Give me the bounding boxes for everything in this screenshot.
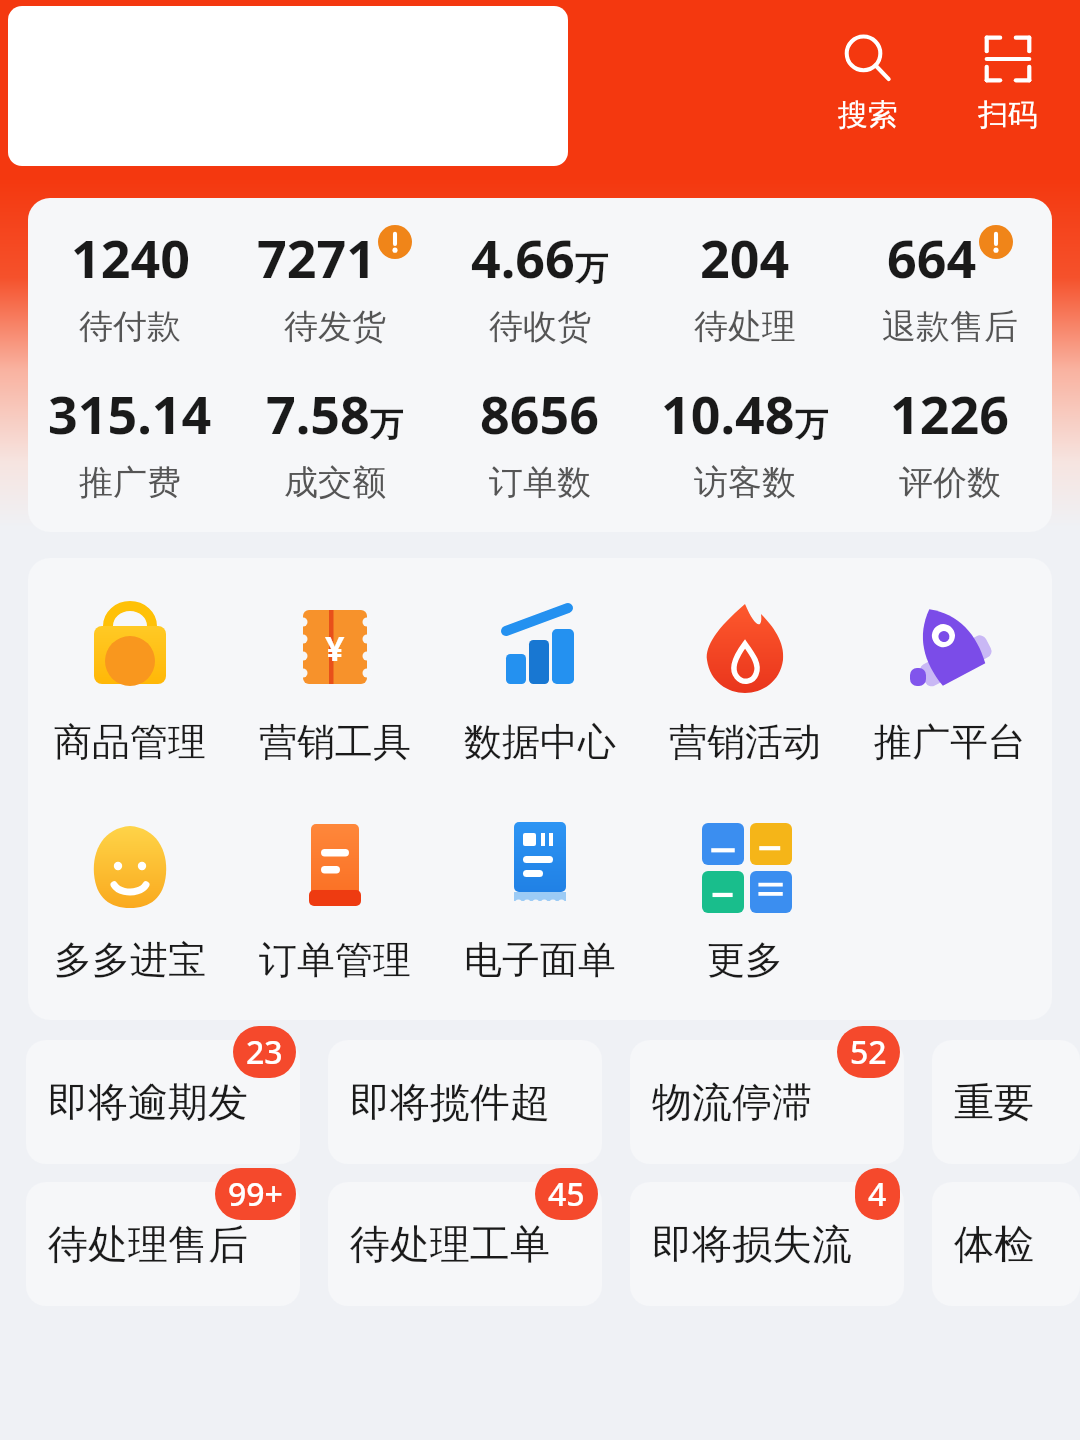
staticText: 营销活动 bbox=[669, 718, 821, 766]
button[interactable]: 物流停滞 bbox=[630, 1040, 904, 1164]
staticText: 即将揽件超时 bbox=[350, 1077, 580, 1127]
button[interactable]: 数据中心 bbox=[437, 592, 642, 768]
staticText: 退款售后 bbox=[882, 305, 1018, 348]
button[interactable]: 315.14 bbox=[28, 376, 232, 506]
staticText: 评价数 bbox=[899, 461, 1001, 504]
staticText: 万 bbox=[370, 404, 403, 446]
button[interactable]: 7271 bbox=[232, 220, 437, 350]
button[interactable]: 664 bbox=[847, 220, 1052, 350]
button[interactable]: 更多 bbox=[642, 810, 847, 986]
staticText: 订单数 bbox=[489, 461, 591, 504]
staticText: 订单管理 bbox=[259, 936, 411, 984]
button[interactable]: 8656 bbox=[437, 376, 642, 506]
staticText: 10.48 bbox=[661, 378, 795, 449]
staticText: 1240 bbox=[71, 222, 190, 293]
staticText: 万 bbox=[575, 248, 608, 290]
staticText: 电子面单 bbox=[464, 936, 616, 984]
button[interactable]: 多多进宝 bbox=[28, 810, 232, 986]
staticText: 成交额 bbox=[284, 461, 386, 504]
staticText: 23 bbox=[246, 1030, 283, 1074]
staticText: 商品管理 bbox=[54, 718, 206, 766]
staticText: 即将逾期发货 bbox=[48, 1077, 278, 1127]
staticText: 更多 bbox=[707, 936, 783, 984]
button[interactable]: 7.58 bbox=[232, 376, 437, 506]
staticText: 1226 bbox=[890, 378, 1009, 449]
button[interactable]: 电子面单 bbox=[437, 810, 642, 986]
staticText: 664 bbox=[887, 222, 977, 293]
button[interactable]: 推广平台 bbox=[847, 592, 1052, 768]
button[interactable]: Scan QR code bbox=[960, 24, 1056, 138]
button[interactable]: 即将逾期发货 bbox=[26, 1040, 300, 1164]
button[interactable]: Search bbox=[820, 24, 916, 138]
staticText: 4.66 bbox=[471, 222, 575, 293]
staticText: 搜索 bbox=[838, 96, 898, 134]
staticText: 数据中心 bbox=[464, 718, 616, 766]
button[interactable]: 重要 bbox=[932, 1040, 1080, 1164]
staticText: 体检 bbox=[954, 1219, 1034, 1269]
button[interactable]: 商品管理 bbox=[28, 592, 232, 768]
staticText: 204 bbox=[700, 222, 790, 293]
staticText: 扫码 bbox=[978, 96, 1038, 134]
staticText: 45 bbox=[548, 1172, 585, 1216]
staticText: 多多进宝 bbox=[54, 936, 206, 984]
button[interactable]: 待处理售后 bbox=[26, 1182, 300, 1306]
staticText: 8656 bbox=[480, 378, 599, 449]
staticText: 4 bbox=[868, 1172, 887, 1216]
button[interactable]: 体检 bbox=[932, 1182, 1080, 1306]
staticText: 营销工具 bbox=[259, 718, 411, 766]
staticText: 待付款 bbox=[79, 305, 181, 348]
staticText: 7271 bbox=[257, 222, 376, 293]
button[interactable]: 营销活动 bbox=[642, 592, 847, 768]
staticText: 万 bbox=[795, 404, 828, 446]
staticText: 315.14 bbox=[48, 378, 212, 449]
staticText: 99+ bbox=[228, 1172, 283, 1216]
button[interactable]: 待处理工单 bbox=[328, 1182, 602, 1306]
button[interactable]: 即将损失流量 bbox=[630, 1182, 904, 1306]
staticText: 访客数 bbox=[694, 461, 796, 504]
button[interactable]: 10.48 bbox=[642, 376, 847, 506]
button[interactable]: 204 bbox=[642, 220, 847, 350]
button[interactable]: 1240 bbox=[28, 220, 232, 350]
staticText: 待处理工单 bbox=[350, 1219, 550, 1269]
staticText: 52 bbox=[850, 1030, 887, 1074]
button[interactable]: 订单管理 bbox=[232, 810, 437, 986]
button[interactable]: 即将揽件超时 bbox=[328, 1040, 602, 1164]
staticText: 待发货 bbox=[284, 305, 386, 348]
button[interactable]: 4.66 bbox=[437, 220, 642, 350]
staticText: 待处理售后 bbox=[48, 1219, 248, 1269]
staticText: 推广平台 bbox=[874, 718, 1026, 766]
button[interactable]: ¥ bbox=[232, 592, 437, 768]
staticText: ¥ bbox=[325, 625, 345, 671]
staticText: 即将损失流量 bbox=[652, 1219, 882, 1269]
staticText: 推广费 bbox=[79, 461, 181, 504]
staticText: 待收货 bbox=[489, 305, 591, 348]
staticText: 物流停滞 bbox=[652, 1077, 812, 1127]
staticText: 7.58 bbox=[266, 378, 370, 449]
button[interactable]: 1226 bbox=[847, 376, 1052, 506]
staticText: 重要 bbox=[954, 1077, 1034, 1127]
staticText: 待处理 bbox=[694, 305, 796, 348]
